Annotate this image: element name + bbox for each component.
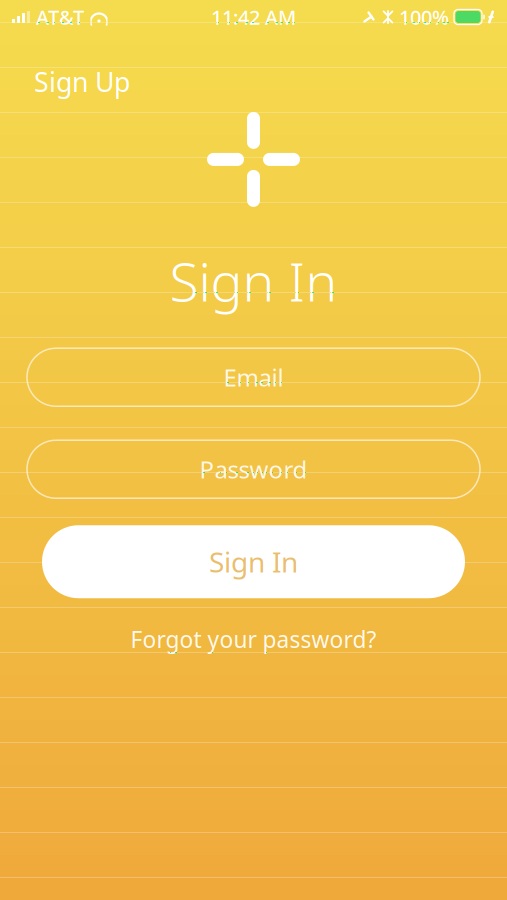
staticText: 100%	[399, 4, 449, 30]
staticText: Sign In	[209, 543, 298, 580]
button[interactable]: Sign In	[42, 525, 465, 598]
button[interactable]: Forgot your password?	[122, 618, 384, 660]
button[interactable]: Password	[27, 440, 480, 498]
staticText: Forgot your password?	[130, 624, 376, 654]
staticText: Sign In	[169, 245, 337, 316]
staticText: AT&T	[36, 4, 84, 30]
staticText: 11:42 AM	[211, 4, 296, 30]
staticText: Password	[199, 453, 307, 485]
button[interactable]: Email	[27, 348, 480, 406]
staticText: Email	[223, 361, 283, 393]
button[interactable]: Sign Up	[30, 60, 134, 103]
staticText: Sign Up	[34, 64, 130, 99]
